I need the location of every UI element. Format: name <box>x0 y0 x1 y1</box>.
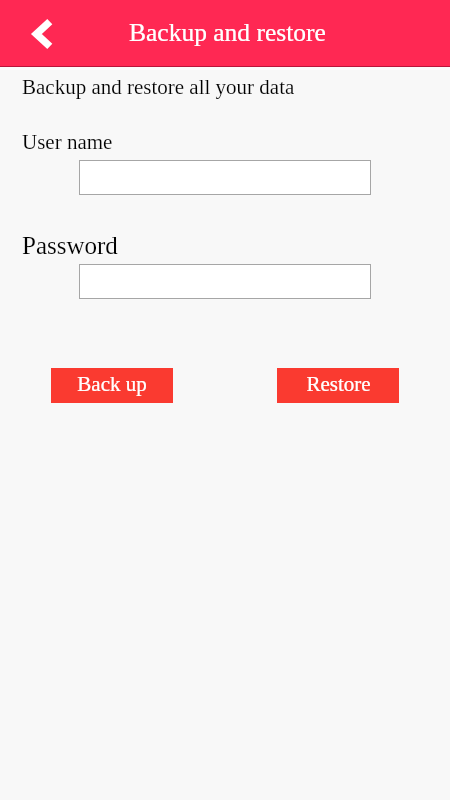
staticText: User name <box>22 130 113 153</box>
button[interactable]: Back <box>18 10 64 56</box>
staticText: Password <box>22 232 118 260</box>
button[interactable]: Restore <box>277 368 399 403</box>
staticText: Backup and restore <box>129 18 326 46</box>
button[interactable]: Back up <box>51 368 173 403</box>
staticText: Restore <box>306 372 371 395</box>
staticText: Back up <box>77 372 147 395</box>
button[interactable] <box>79 264 371 299</box>
staticText: Backup and restore all your data <box>22 75 295 98</box>
button[interactable] <box>79 160 371 195</box>
